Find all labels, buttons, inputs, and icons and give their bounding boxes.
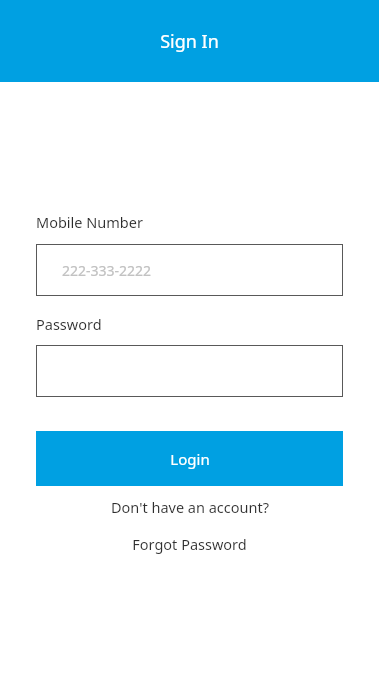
staticText: Don't have an account? [111,497,269,517]
staticText: Mobile Number [36,212,143,232]
staticText: Password [36,314,102,334]
staticText: 222-333-2222 [62,261,152,280]
button[interactable] [36,345,343,397]
staticText: Forgot Password [132,534,247,554]
button[interactable]: 222-333-2222 [36,244,343,296]
button[interactable]: Login [36,431,343,486]
staticText: Sign In [160,29,219,54]
button[interactable]: Forgot Password [36,534,343,554]
button[interactable]: Don't have an account? [36,497,343,517]
staticText: Login [170,449,210,469]
